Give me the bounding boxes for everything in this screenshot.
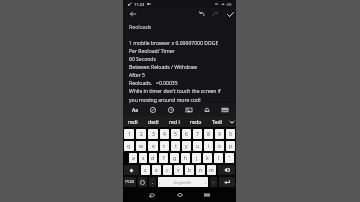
- staticText: b: [188, 167, 192, 174]
- button[interactable]: 8: [204, 129, 213, 139]
- button[interactable]: z: [141, 165, 150, 175]
- button[interactable]: Image: [182, 103, 195, 116]
- button[interactable]: 1: [124, 129, 134, 139]
- button[interactable]: i: [204, 141, 213, 151]
- staticText: x: [155, 167, 158, 174]
- button[interactable]: redi: [123, 116, 143, 127]
- staticText: 8: [207, 131, 210, 138]
- button[interactable]: 7: [193, 129, 202, 139]
- button[interactable]: t: [171, 141, 180, 151]
- button[interactable]: q: [124, 141, 134, 151]
- staticText: 7: [196, 131, 199, 138]
- staticText: 1: [128, 131, 131, 138]
- button[interactable]: Notification: [200, 103, 213, 116]
- button[interactable]: b: [185, 165, 194, 175]
- button[interactable]: l: [214, 153, 223, 163]
- button[interactable]: Backspace: [218, 165, 235, 175]
- button[interactable]: x: [152, 165, 161, 175]
- button[interactable]: g: [170, 153, 179, 163]
- staticText: j: [196, 155, 198, 162]
- button[interactable]: ,: [149, 177, 156, 187]
- button[interactable]: Shift: [124, 165, 139, 175]
- button[interactable]: a: [129, 153, 137, 163]
- staticText: 11:23: [134, 2, 145, 7]
- staticText: ›: [205, 180, 207, 185]
- button[interactable]: v: [174, 165, 183, 175]
- button[interactable]: k: [203, 153, 212, 163]
- button[interactable]: 3: [148, 129, 158, 139]
- button[interactable]: Home: [174, 189, 186, 201]
- staticText: Per Reoload/ Timer: [129, 48, 175, 55]
- button[interactable]: e: [148, 141, 158, 151]
- staticText: 4: [163, 131, 166, 138]
- button[interactable]: Undo: [196, 8, 208, 20]
- staticText: q: [127, 143, 131, 150]
- button[interactable]: p: [226, 141, 235, 151]
- button[interactable]: 6: [182, 129, 191, 139]
- button[interactable]: m: [207, 165, 216, 175]
- button[interactable]: .: [210, 177, 217, 187]
- button[interactable]: r: [160, 141, 169, 151]
- button[interactable]: Redo: [209, 8, 221, 20]
- staticText: z: [144, 167, 147, 174]
- staticText: English(N: [174, 180, 191, 185]
- staticText: l: [218, 155, 220, 162]
- button[interactable]: f: [159, 153, 168, 163]
- staticText: Reoloads. =0.00035: [129, 80, 178, 87]
- staticText: 5: [174, 131, 177, 138]
- button[interactable]: redo: [185, 116, 206, 127]
- button[interactable]: s: [139, 153, 147, 163]
- button[interactable]: Checklist: [146, 103, 159, 116]
- staticText: Tedi: [212, 118, 222, 125]
- staticText: f: [163, 155, 165, 162]
- button[interactable]: 5: [171, 129, 180, 139]
- staticText: 3: [152, 131, 155, 138]
- button[interactable]: n: [196, 165, 205, 175]
- button[interactable]: w: [136, 141, 146, 151]
- button[interactable]: Enter: [219, 177, 235, 187]
- staticText: ,: [152, 179, 154, 185]
- button[interactable]: h: [181, 153, 190, 163]
- button[interactable]: Done: [224, 8, 236, 20]
- staticText: Between Reloads / Withdraw: [129, 64, 198, 71]
- button[interactable]: o: [215, 141, 224, 151]
- button[interactable]: j: [192, 153, 201, 163]
- staticText: 9: [218, 131, 221, 138]
- staticText: red i: [169, 118, 180, 125]
- staticText: n: [199, 167, 203, 174]
- staticText: Reoloads: [129, 23, 152, 30]
- button[interactable]: Tedi: [206, 116, 227, 127]
- button[interactable]: c: [163, 165, 172, 175]
- button[interactable]: dedi: [143, 116, 164, 127]
- button[interactable]: ?123: [124, 177, 136, 187]
- button[interactable]: 9: [215, 129, 224, 139]
- button[interactable]: red i: [164, 116, 185, 127]
- staticText: t: [175, 143, 177, 150]
- button[interactable]: Emoji: [138, 177, 147, 187]
- button[interactable]: d: [149, 153, 157, 163]
- button[interactable]: y: [182, 141, 191, 151]
- staticText: 60 Seconds: [129, 56, 156, 63]
- button[interactable]: Reminder history: [164, 103, 177, 116]
- staticText: While in timer don't touch the screen if: [129, 88, 221, 95]
- button[interactable]: u: [193, 141, 202, 151]
- button[interactable]: ‹: [158, 177, 208, 187]
- staticText: o: [218, 143, 222, 150]
- staticText: m: [209, 167, 214, 174]
- button[interactable]: Back: [146, 189, 158, 201]
- button[interactable]: Text format: [128, 103, 141, 116]
- staticText: s: [142, 155, 145, 162]
- button[interactable]: Table: [218, 103, 231, 116]
- staticText: i: [208, 143, 210, 150]
- staticText: dedi: [148, 118, 159, 125]
- staticText: r: [163, 143, 166, 150]
- button[interactable]: Back: [127, 8, 139, 20]
- button[interactable]: ': [225, 153, 234, 163]
- button[interactable]: 2: [136, 129, 146, 139]
- button[interactable]: 0: [226, 129, 235, 139]
- staticText: 0: [229, 131, 232, 138]
- button[interactable]: Recents: [201, 189, 213, 201]
- button[interactable]: More suggestions: [227, 116, 236, 127]
- button[interactable]: 4: [160, 129, 169, 139]
- staticText: After 5: [129, 72, 145, 79]
